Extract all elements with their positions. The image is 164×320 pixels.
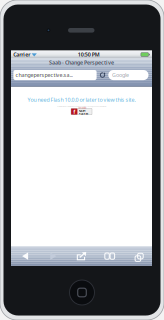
button[interactable]: changeperspective.sa... xyxy=(13,70,97,80)
button[interactable]: Share xyxy=(67,246,96,266)
button[interactable]: Reload xyxy=(99,70,106,80)
button[interactable]: Google xyxy=(108,70,148,80)
staticText: Saab - Change Perspective xyxy=(49,59,114,66)
staticText: Google xyxy=(112,71,129,79)
button[interactable]: f xyxy=(71,108,92,115)
button[interactable]: Back xyxy=(11,246,39,266)
staticText: 10:50 PM xyxy=(78,51,100,58)
button[interactable]: Tabs xyxy=(124,246,152,266)
button[interactable]: Forward xyxy=(39,246,67,266)
button[interactable]: Bookmarks xyxy=(96,246,124,266)
staticText: f xyxy=(73,108,75,115)
staticText: Get ADOBE xyxy=(78,107,86,109)
staticText: FLASH PLAYER xyxy=(78,109,88,116)
staticText: changeperspective.sa... xyxy=(16,71,73,79)
staticText: Carrier xyxy=(13,51,30,58)
staticText: You need Flash 10.0.0 or later to view t… xyxy=(27,96,135,103)
staticText: IF YOU BELIEVE YOU HAVE FLASH PLAYER INS… xyxy=(56,105,106,107)
